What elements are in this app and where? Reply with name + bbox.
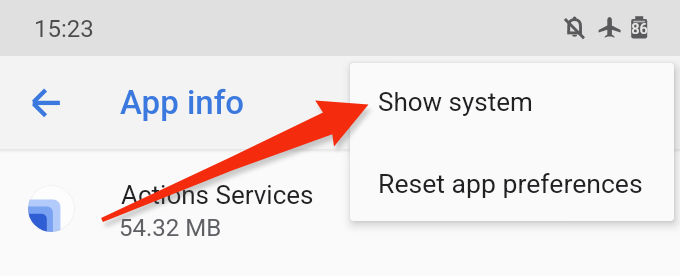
staticText: Actions Services [121,180,314,210]
staticText: 15:23 [34,15,94,43]
button[interactable]: Show system [350,63,674,142]
staticText: Reset app preferences [378,168,643,199]
staticText: Show system [378,87,533,117]
button[interactable]: Reset app preferences [350,142,674,221]
button[interactable]: Navigate up [12,78,70,136]
staticText: App info [120,83,245,122]
staticText: 54.32 MB [119,214,222,242]
staticText: 86 [631,21,647,38]
button[interactable]: Actions Services [0,168,680,250]
